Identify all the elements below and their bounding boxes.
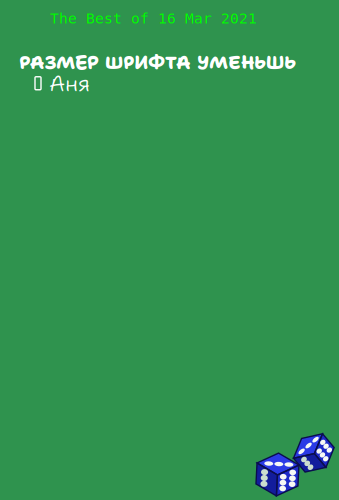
staticText: The Best of 16 Mar 2021 — [50, 10, 257, 27]
staticText: РАЗМЕР ШРИФТА УМЕНЬШЬ — [19, 50, 296, 75]
staticText: Аня — [49, 68, 90, 98]
